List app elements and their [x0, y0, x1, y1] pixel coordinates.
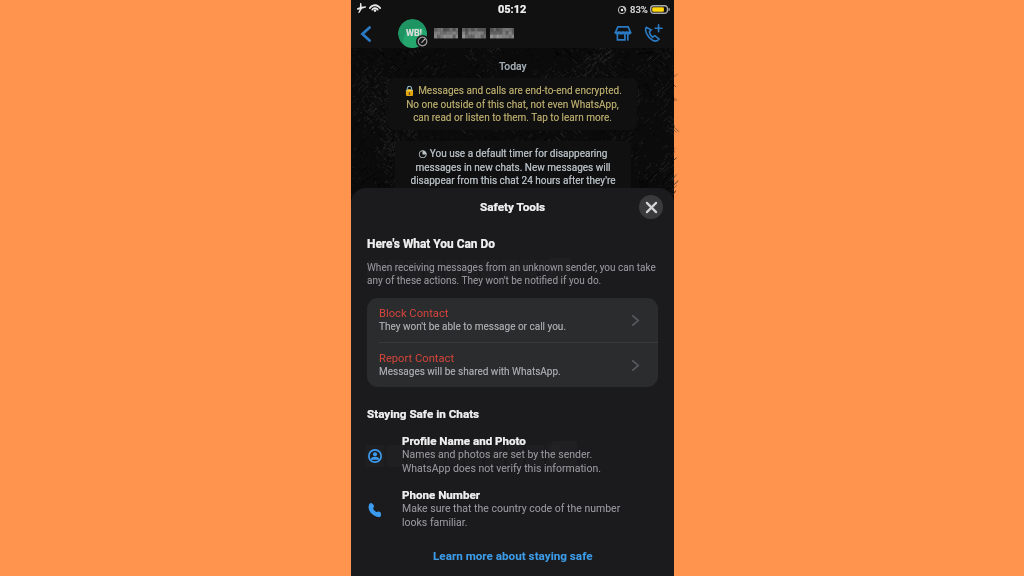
staticText: 05:12 — [498, 3, 527, 16]
staticText: Report Contact — [379, 352, 455, 365]
other: Wi-Fi — [369, 3, 381, 12]
staticText: ◔ You use a default timer for disappeari… — [410, 148, 616, 199]
staticText: Phone Number — [402, 488, 480, 502]
staticText: 83% — [630, 4, 648, 15]
other: Airplane mode — [357, 3, 366, 13]
button[interactable]: Report Contact — [367, 343, 658, 387]
button[interactable]: Back — [353, 21, 378, 46]
button[interactable]: Block Contact — [367, 298, 658, 342]
staticText: Staying Safe in Chats — [367, 407, 480, 421]
staticText: Here's What You Can Do — [367, 237, 495, 251]
staticText: Learn more about staying safe — [433, 549, 593, 563]
button[interactable]: Voice call — [640, 20, 666, 46]
staticText: Profile Name and Photo — [402, 434, 526, 448]
staticText: Messages will be shared with WhatsApp. — [379, 366, 561, 378]
staticText: WB! — [406, 28, 423, 39]
button[interactable]: Close — [639, 195, 663, 219]
staticText: Make sure that the country code of the n… — [402, 502, 621, 529]
staticText: When receiving messages from an unknown … — [367, 262, 656, 287]
staticText: Names and photos are set by the sender. … — [402, 448, 601, 475]
staticText: Today — [499, 60, 527, 72]
staticText: They won't be able to message or call yo… — [379, 321, 567, 333]
staticText: Safety Tools — [480, 200, 546, 214]
button[interactable]: Business catalog — [610, 20, 636, 46]
staticText: 🔒 Messages and calls are end-to-end encr… — [403, 85, 622, 123]
staticText: Block Contact — [379, 307, 449, 320]
button[interactable]: Learn more about staying safe — [351, 549, 674, 576]
